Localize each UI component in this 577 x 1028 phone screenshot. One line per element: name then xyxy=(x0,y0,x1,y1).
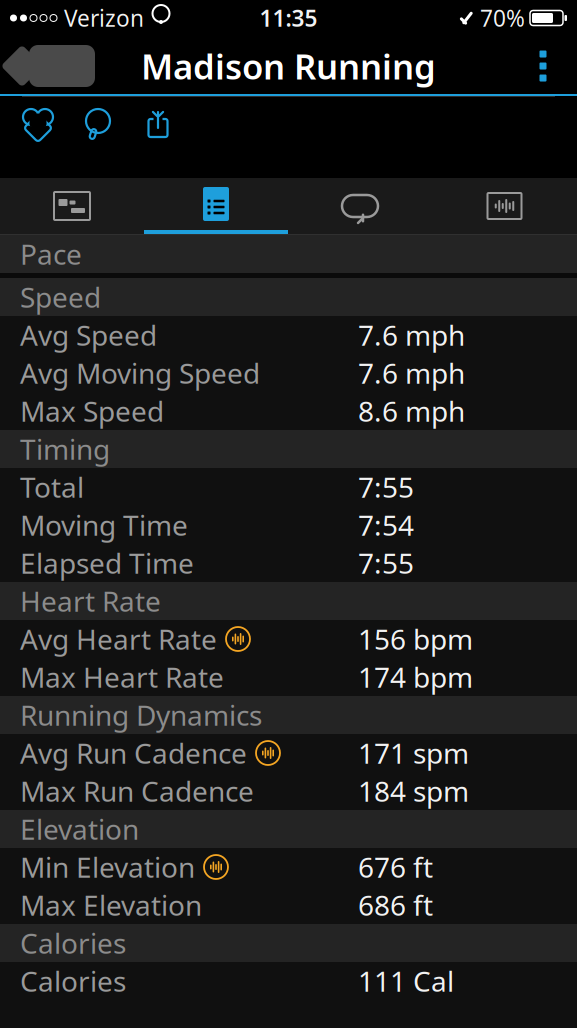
staticText: Elevation xyxy=(20,810,139,848)
staticText: Max Speed xyxy=(20,392,164,430)
button[interactable]: Avg Moving Speed xyxy=(0,354,577,392)
staticText: Moving Time xyxy=(20,506,188,544)
staticText: Calories xyxy=(20,962,126,1000)
button[interactable]: Back xyxy=(0,37,98,95)
staticText: 111 Cal xyxy=(358,962,454,1000)
staticText: 184 spm xyxy=(358,772,469,810)
button[interactable]: Map xyxy=(0,178,144,234)
staticText: Verizon xyxy=(64,3,144,33)
staticText: 676 ft xyxy=(358,848,433,886)
staticText: 70% xyxy=(480,3,525,33)
button[interactable]: Moving Time xyxy=(0,506,577,544)
staticText: Avg Moving Speed xyxy=(20,354,260,392)
button[interactable]: Charts xyxy=(432,178,577,234)
staticText: 174 bpm xyxy=(358,658,473,696)
button[interactable]: Like xyxy=(8,97,68,149)
button[interactable]: Laps xyxy=(288,178,432,234)
staticText: Speed xyxy=(20,278,101,316)
button[interactable]: Total xyxy=(0,468,577,506)
staticText: 171 spm xyxy=(358,734,469,772)
staticText: Min Elevation xyxy=(20,848,195,886)
staticText: Calories xyxy=(20,924,126,962)
staticText: Total xyxy=(20,468,84,506)
staticText: 7:54 xyxy=(358,506,414,544)
staticText: Madison Running xyxy=(141,43,436,89)
staticText: Pace xyxy=(20,235,82,273)
staticText: Max Elevation xyxy=(20,886,202,924)
staticText: 686 ft xyxy=(358,886,433,924)
staticText: 8.6 mph xyxy=(358,392,465,430)
button[interactable]: Avg Speed xyxy=(0,316,577,354)
button[interactable]: Max Heart Rate xyxy=(0,658,577,696)
button[interactable]: Comment xyxy=(68,97,128,149)
staticText: 11:35 xyxy=(259,3,317,33)
button[interactable]: Max Elevation xyxy=(0,886,577,924)
staticText: 7:55 xyxy=(358,468,414,506)
button[interactable]: Max Run Cadence xyxy=(0,772,577,810)
button[interactable]: More options xyxy=(521,38,565,94)
staticText: Max Run Cadence xyxy=(20,772,254,810)
staticText: Timing xyxy=(20,430,110,468)
staticText: 156 bpm xyxy=(358,620,473,658)
button[interactable]: Min Elevation xyxy=(0,848,577,886)
staticText: Max Heart Rate xyxy=(20,658,224,696)
button[interactable]: Avg Heart Rate xyxy=(0,620,577,658)
staticText: Running Dynamics xyxy=(20,696,262,734)
staticText: Elapsed Time xyxy=(20,544,194,582)
button[interactable]: Details xyxy=(144,178,288,234)
button[interactable]: Elapsed Time xyxy=(0,544,577,582)
button[interactable]: Calories xyxy=(0,962,577,1000)
staticText: Avg Run Cadence xyxy=(20,734,247,772)
staticText: Heart Rate xyxy=(20,582,161,620)
button[interactable]: Share xyxy=(128,97,188,149)
staticText: Avg Speed xyxy=(20,316,157,354)
button[interactable]: Max Speed xyxy=(0,392,577,430)
button[interactable]: Avg Run Cadence xyxy=(0,734,577,772)
staticText: 7.6 mph xyxy=(358,316,465,354)
staticText: 7.6 mph xyxy=(358,354,465,392)
staticText: 7:55 xyxy=(358,544,414,582)
staticText: Avg Heart Rate xyxy=(20,620,217,658)
